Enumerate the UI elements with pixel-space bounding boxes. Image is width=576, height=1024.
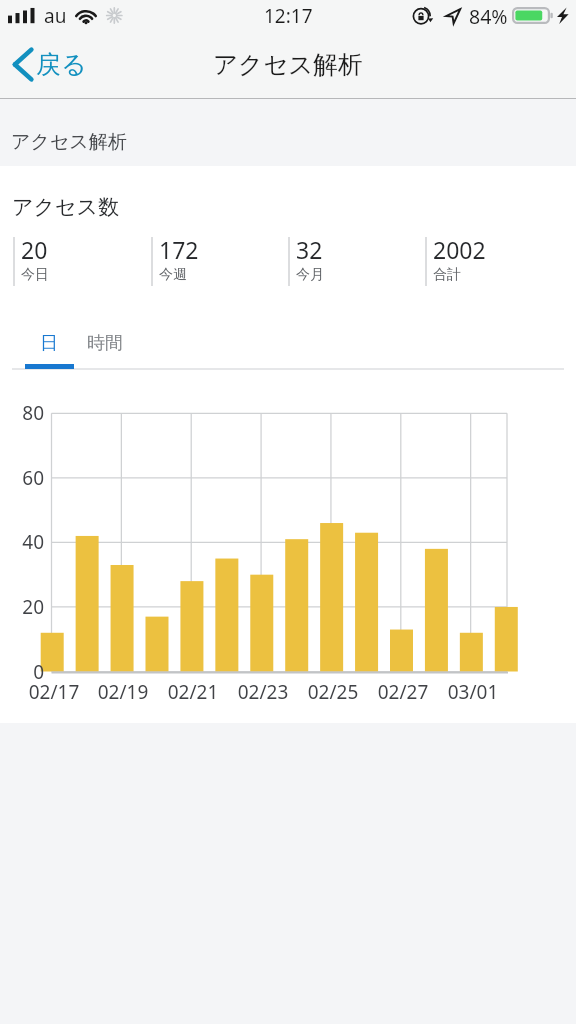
staticText: 02/23 [228, 679, 298, 705]
staticText: 12:17 [264, 3, 313, 29]
staticText: アクセス解析 [11, 130, 127, 154]
staticText: 02/19 [88, 679, 158, 705]
staticText: 今週 [159, 266, 187, 284]
staticText: 2002 [433, 234, 486, 265]
staticText: 合計 [433, 266, 461, 284]
staticText: 日 [40, 332, 58, 355]
staticText: 03/01 [438, 679, 508, 705]
staticText: 今月 [296, 266, 324, 284]
staticText: 60 [0, 465, 44, 491]
staticText: 20 [0, 594, 44, 620]
staticText: 02/21 [158, 679, 228, 705]
staticText: 02/25 [298, 679, 368, 705]
staticText: 32 [296, 234, 323, 265]
button[interactable]: 日 [20, 325, 78, 359]
button[interactable]: 戻る [0, 42, 99, 87]
staticText: 戻る [36, 49, 87, 80]
staticText: 02/17 [19, 679, 89, 705]
staticText: 02/27 [368, 679, 438, 705]
staticText: 20 [21, 234, 48, 265]
staticText: 0 [0, 659, 44, 685]
staticText: アクセス数 [12, 194, 119, 220]
staticText: 40 [0, 529, 44, 555]
staticText: 172 [159, 234, 199, 265]
staticText: アクセス解析 [213, 49, 363, 80]
button[interactable]: 時間 [78, 325, 132, 359]
staticText: au [44, 3, 67, 29]
staticText: 今日 [21, 266, 49, 284]
other: Rotation lock [413, 7, 435, 26]
staticText: 80 [0, 400, 44, 426]
staticText: 84% [469, 3, 508, 30]
other: Location [444, 7, 462, 26]
staticText: 時間 [87, 332, 123, 355]
